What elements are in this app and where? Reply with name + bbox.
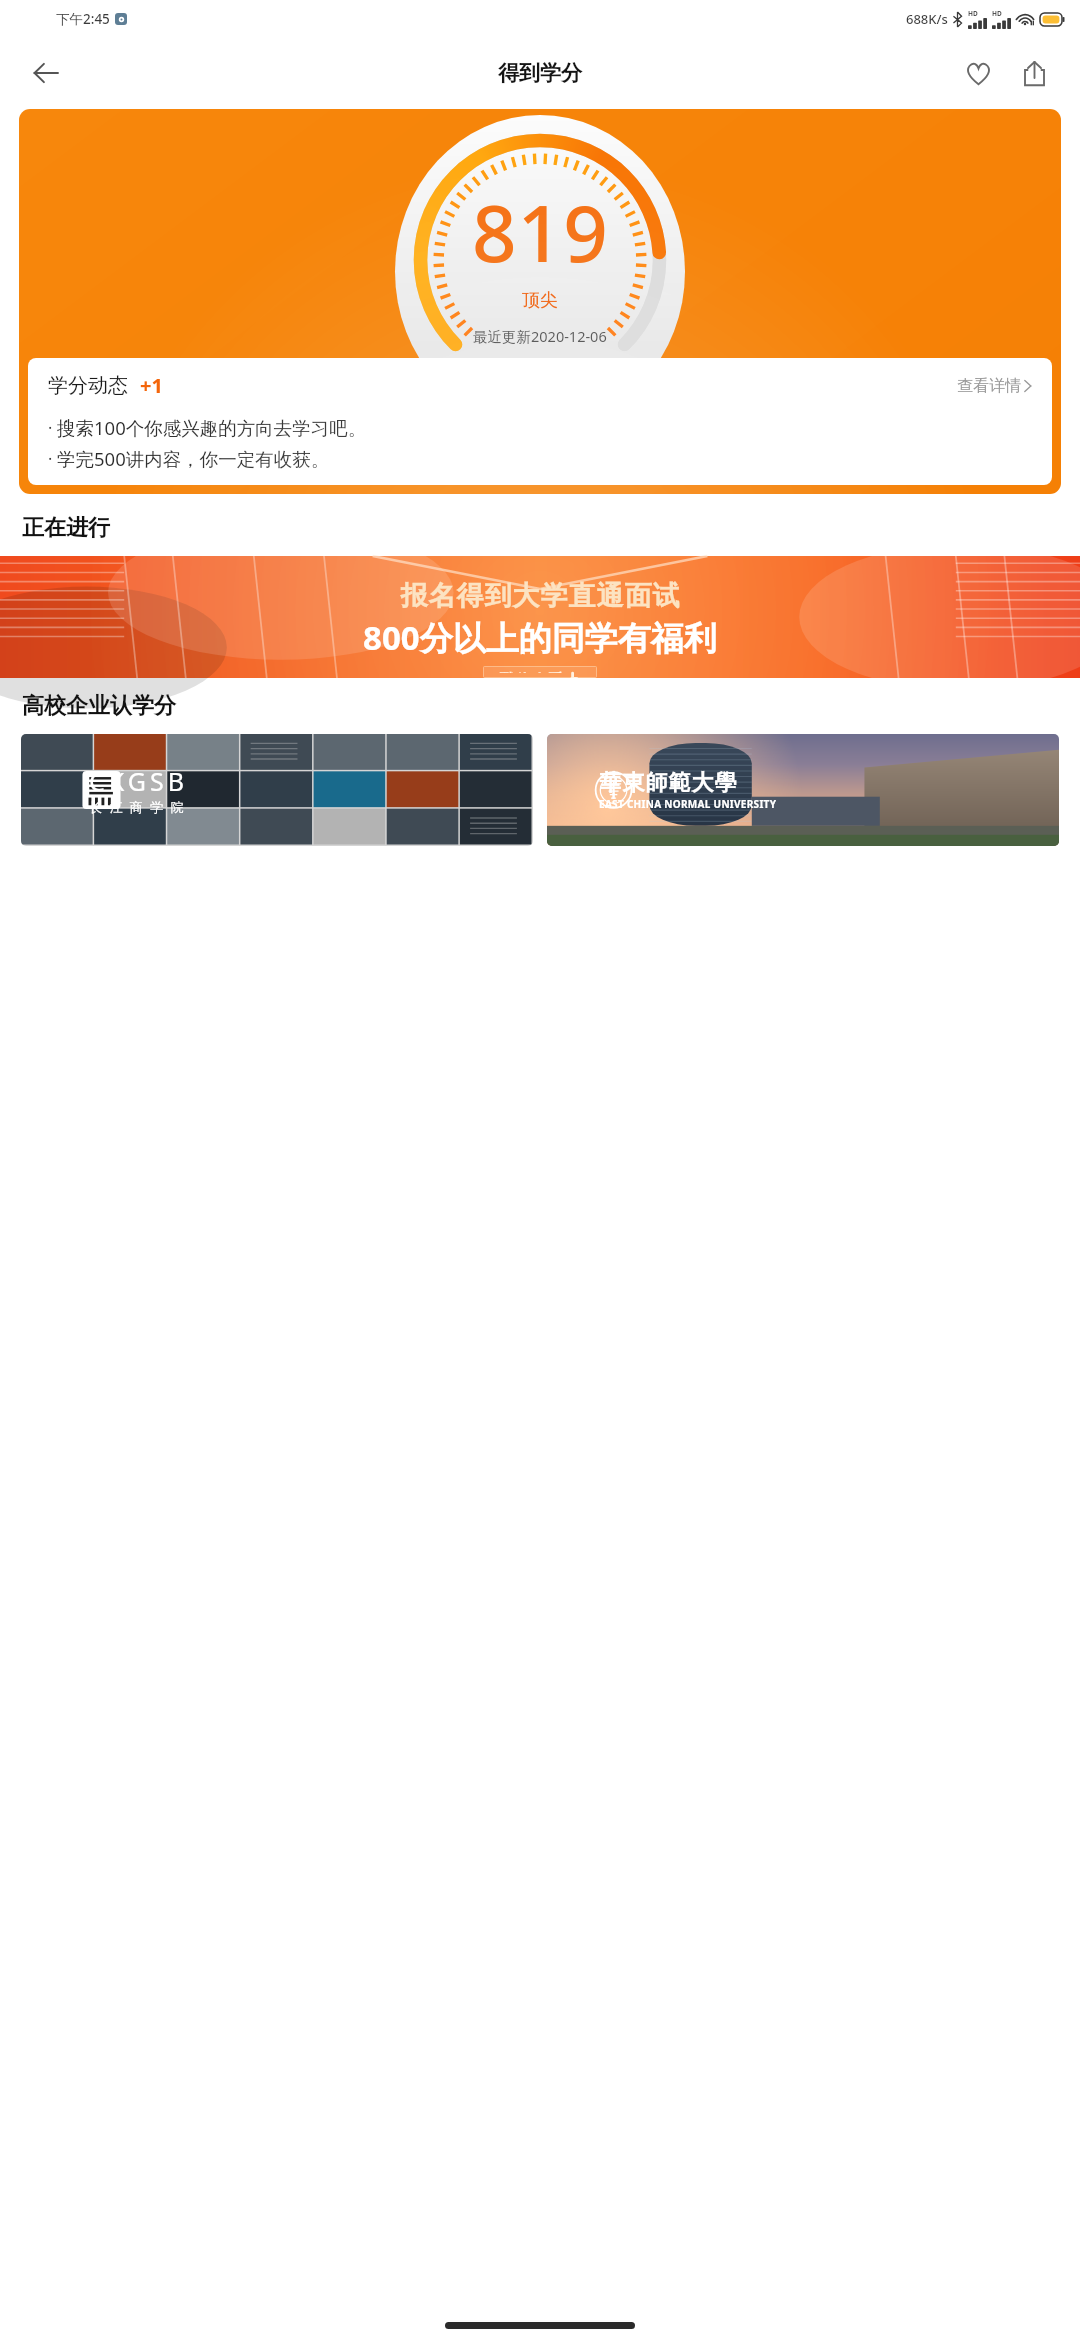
staticText: 顶尖 xyxy=(522,289,558,312)
button[interactable]: 戳此查看 xyxy=(483,666,597,678)
button[interactable]: Share xyxy=(1010,49,1058,97)
staticText: 报名得到大学直通面试 xyxy=(400,579,680,613)
staticText: 搜索100个你感兴趣的方向去学习吧。 xyxy=(57,415,367,440)
button[interactable]: 华东师范大学 xyxy=(547,734,1059,846)
staticText: 戳此查看 xyxy=(499,671,563,673)
button[interactable]: 查看详情 xyxy=(957,376,1032,396)
staticText: 学完500讲内容，你一定有收获。 xyxy=(57,446,330,471)
staticText: · xyxy=(48,448,53,470)
staticText: 華東師範大學 xyxy=(599,769,737,797)
staticText: 高校企业认学分 xyxy=(22,692,176,720)
button[interactable]: 报名得到大学直通面试 xyxy=(0,556,1080,678)
staticText: 下午2:45 xyxy=(56,10,110,28)
button[interactable]: 819 xyxy=(19,109,1061,494)
staticText: 长 江 商 学 院 xyxy=(89,798,186,816)
staticText: +1 xyxy=(140,372,163,399)
staticText: 800分以上的同学有福利 xyxy=(363,615,717,660)
button[interactable]: 长江商学院 xyxy=(21,734,533,846)
staticText: EAST CHINA NORMAL UNIVERSITY xyxy=(599,797,777,811)
button[interactable]: Favorite xyxy=(954,49,1002,97)
staticText: 正在进行 xyxy=(22,514,110,542)
staticText: · xyxy=(48,417,53,439)
staticText: 查看详情 xyxy=(957,376,1021,396)
button[interactable]: Back xyxy=(20,47,72,99)
staticText: 最近更新2020-12-06 xyxy=(473,326,607,346)
staticText: 学分动态 xyxy=(48,373,128,398)
staticText: CKGSB xyxy=(89,764,188,798)
staticText: 688K/s xyxy=(906,10,948,28)
button[interactable]: 学分动态 xyxy=(28,358,1052,485)
staticText: HD xyxy=(968,9,978,18)
staticText: 819 xyxy=(472,179,609,285)
staticText: 得到学分 xyxy=(498,60,582,86)
staticText: HD xyxy=(992,9,1002,18)
